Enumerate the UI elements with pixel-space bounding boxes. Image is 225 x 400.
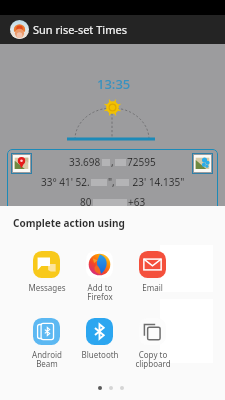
staticText: Complete action using (13, 216, 125, 230)
staticText: 33.698 (69, 155, 101, 169)
staticText: Add to Firefox (87, 282, 113, 303)
staticText: , (111, 155, 114, 169)
button[interactable]: Email (132, 251, 173, 293)
button[interactable]: Android Beam (26, 318, 67, 370)
staticText: +63 (128, 195, 146, 209)
button[interactable]: App icon (0, 15, 225, 44)
other: App icon (10, 20, 29, 39)
button[interactable]: Open map (11, 153, 32, 174)
staticText: 33° 41' 52. (41, 175, 90, 189)
button[interactable]: Add to Firefox (79, 251, 120, 303)
button[interactable]: Messages (26, 251, 67, 293)
staticText: Email (142, 282, 163, 293)
staticText: 80 (80, 195, 92, 209)
button[interactable]: Show coordinates on map (192, 153, 213, 174)
staticText: Copy to clipboard (135, 349, 171, 370)
button[interactable]: Copy to clipboard (132, 318, 173, 370)
staticText: Messages (28, 282, 66, 293)
staticText: 23' 14.135" (130, 175, 185, 189)
staticText: ", (108, 175, 115, 189)
staticText: Bluetooth (81, 349, 119, 360)
staticText: 72595 (127, 155, 156, 169)
staticText: 13:35 (97, 75, 131, 93)
staticText: Android Beam (32, 349, 62, 370)
button[interactable]: Bluetooth (79, 318, 120, 360)
staticText: Sun rise-set Times (33, 22, 127, 37)
